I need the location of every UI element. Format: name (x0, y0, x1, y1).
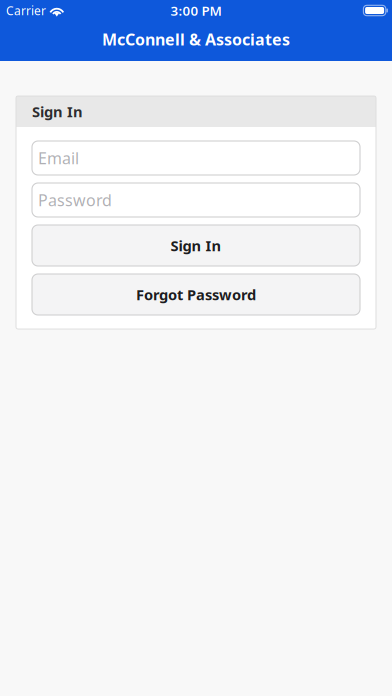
staticText: 3:00 PM (170, 2, 221, 19)
staticText: McConnell & Associates (102, 29, 290, 50)
staticText: Forgot Password (136, 285, 256, 304)
staticText: Sign In (32, 102, 83, 121)
staticText: Email (38, 147, 79, 169)
button[interactable]: Email (32, 141, 360, 175)
button[interactable]: Password (32, 183, 360, 217)
staticText: Password (38, 189, 112, 211)
button[interactable]: Forgot Password (32, 274, 360, 315)
staticText: Sign In (170, 236, 221, 255)
button[interactable]: Sign In (32, 225, 360, 266)
staticText: Carrier (6, 2, 46, 18)
